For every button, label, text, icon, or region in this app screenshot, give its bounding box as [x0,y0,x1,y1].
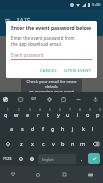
staticText: w [14,111,19,119]
staticText: i [77,111,79,119]
button[interactable]: k [78,121,88,136]
button[interactable]: GIF [29,92,39,106]
staticText: j [72,125,74,133]
button[interactable]: Emoji [15,151,26,166]
staticText: a [10,125,14,133]
staticText: 6 [59,108,61,112]
button[interactable]: Shift [0,136,16,151]
staticText: g [51,125,55,133]
staticText: o [86,111,90,119]
staticText: 8 [79,108,81,112]
staticText: 9 [89,108,91,112]
staticText: 2 [18,108,20,112]
button[interactable]: Back [0,166,25,183]
staticText: 3 [29,108,31,112]
button[interactable]: . [76,151,87,166]
button[interactable]: Hide keyboard [77,166,103,183]
staticText: k [82,125,85,133]
staticText: d [31,125,35,133]
staticText: z [20,140,23,148]
staticText: 5:40 [92,2,101,8]
button[interactable]: a [6,121,17,136]
button[interactable]: v [48,136,58,151]
button[interactable]: m [78,136,88,151]
button[interactable]: Clipboard [58,92,68,106]
button[interactable]: Backspace [88,136,103,151]
staticText: Enter the event password below [11,25,92,32]
button[interactable]: d [28,121,38,136]
button[interactable]: l [88,121,98,136]
button[interactable]: More options [73,92,83,106]
staticText: x [31,140,34,148]
button[interactable]: f [38,121,48,136]
button[interactable]: n [68,136,78,151]
button[interactable]: e [22,106,33,121]
staticText: OPEN EVENT [64,68,92,74]
button[interactable]: CANCEL [38,66,60,76]
staticText: 0 [99,108,101,112]
button[interactable]: u [63,106,73,121]
button[interactable]: q [0,106,11,121]
staticText: u [66,111,70,119]
button[interactable]: ?123 [0,151,14,166]
staticText: e [26,111,30,119]
staticText: q [4,111,8,119]
staticText: t [47,111,50,119]
staticText: Event password [11,52,44,58]
staticText: 7 [69,108,71,112]
staticText: r [37,111,40,119]
staticText: IAIS [17,16,31,25]
button[interactable]: w [11,106,22,121]
button[interactable]: h [58,121,68,136]
button[interactable]: y [53,106,63,121]
button[interactable]: Stickers [15,92,25,106]
staticText: f [42,125,44,133]
button[interactable]: Recents [51,166,77,183]
button[interactable]: OPEN EVENT [62,66,94,76]
button[interactable]: Enter [88,153,100,164]
staticText: . [81,155,83,162]
staticText: m [80,140,86,148]
button[interactable]: s [17,121,28,136]
staticText: c [42,140,45,148]
button[interactable]: r [33,106,43,121]
button[interactable]: Language [26,151,37,166]
button[interactable]: o [83,106,93,121]
staticText: 5 [49,108,51,112]
staticText: Enter the event password from the app do… [11,35,75,47]
staticText: GIF [31,97,37,101]
button[interactable]: g [48,121,58,136]
button[interactable]: Google [0,92,10,106]
staticText: p [96,111,100,119]
button[interactable]: Settings [44,92,54,106]
staticText: b [61,140,65,148]
button[interactable]: j [68,121,78,136]
staticText: v [52,140,55,148]
button[interactable]: p [93,106,103,121]
staticText: CANCEL [40,68,58,74]
button[interactable]: t [43,106,53,121]
button[interactable]: i [73,106,83,121]
button[interactable]: Space [38,154,76,164]
button[interactable]: b [58,136,68,151]
staticText: Check your email for more details on acc… [21,79,82,92]
button[interactable]: Home [25,166,51,183]
staticText: y [57,111,60,119]
staticText: l [92,125,94,133]
staticText: ?123 [3,156,12,161]
button[interactable]: x [27,136,38,151]
button[interactable]: c [38,136,48,151]
staticText: 4 [39,108,41,112]
staticText: h [61,125,65,133]
button[interactable]: Voice input [90,92,100,106]
button[interactable]: z [16,136,27,151]
staticText: English [42,157,54,162]
staticText: 1 [7,108,9,112]
staticText: s [21,125,24,133]
button[interactable]: Menu [3,16,12,25]
staticText: n [71,140,75,148]
